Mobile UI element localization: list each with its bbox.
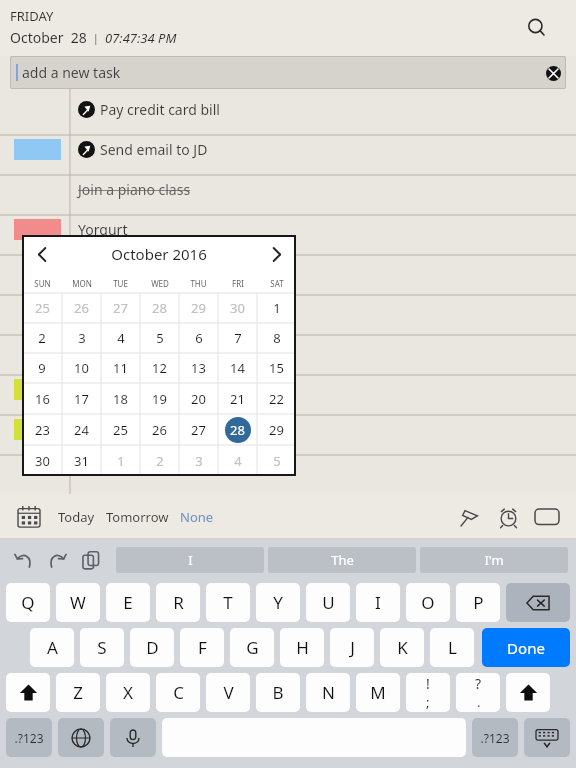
button[interactable]: 1: [101, 445, 140, 476]
button[interactable]: Clear: [540, 60, 566, 86]
button[interactable]: A: [30, 628, 74, 667]
button[interactable]: 14: [218, 353, 257, 383]
button[interactable]: Note: [532, 502, 562, 532]
button[interactable]: P: [456, 583, 500, 622]
button[interactable]: [0, 409, 576, 449]
button[interactable]: [0, 369, 576, 409]
button[interactable]: Voice input: [110, 718, 156, 757]
button[interactable]: 28: [140, 293, 179, 323]
button[interactable]: 25: [101, 414, 140, 445]
button[interactable]: F: [180, 628, 224, 667]
button[interactable]: 24: [62, 414, 101, 445]
button[interactable]: .?123: [6, 718, 52, 757]
button[interactable]: J: [330, 628, 374, 667]
button[interactable]: S: [80, 628, 124, 667]
button[interactable]: Previous month: [28, 240, 56, 268]
button[interactable]: 15: [257, 353, 296, 383]
button[interactable]: 2: [22, 323, 62, 353]
button[interactable]: Tomorrow: [104, 508, 171, 526]
button[interactable]: G: [230, 628, 274, 667]
button[interactable]: Search: [520, 11, 554, 45]
button[interactable]: Shift: [6, 673, 50, 712]
button[interactable]: [0, 329, 576, 369]
button[interactable]: E: [106, 583, 150, 622]
button[interactable]: R: [156, 583, 200, 622]
button[interactable]: 7: [218, 323, 257, 353]
button[interactable]: .?123: [472, 718, 518, 757]
button[interactable]: Alarm: [493, 502, 523, 532]
button[interactable]: [0, 289, 576, 329]
button[interactable]: 26: [62, 293, 101, 323]
button[interactable]: X: [106, 673, 150, 712]
button[interactable]: 17: [62, 383, 101, 414]
button[interactable]: 25: [22, 293, 62, 323]
button[interactable]: Y: [256, 583, 300, 622]
button[interactable]: Shift: [506, 673, 550, 712]
button[interactable]: L: [430, 628, 474, 667]
button[interactable]: Next month: [262, 240, 290, 268]
button[interactable]: 3: [179, 445, 218, 476]
button[interactable]: 3: [62, 323, 101, 353]
button[interactable]: Z: [56, 673, 100, 712]
button[interactable]: V: [206, 673, 250, 712]
button[interactable]: 4: [218, 445, 257, 476]
button[interactable]: [0, 249, 576, 289]
button[interactable]: O: [406, 583, 450, 622]
button[interactable]: 5: [140, 323, 179, 353]
button[interactable]: H: [280, 628, 324, 667]
button[interactable]: M: [356, 673, 400, 712]
button[interactable]: 2: [140, 445, 179, 476]
button[interactable]: K: [380, 628, 424, 667]
button[interactable]: 13: [179, 353, 218, 383]
button[interactable]: 18: [101, 383, 140, 414]
button[interactable]: 16: [22, 383, 62, 414]
button[interactable]: 27: [101, 293, 140, 323]
button[interactable]: Backspace: [506, 583, 570, 622]
button[interactable]: T: [206, 583, 250, 622]
button[interactable]: Redo: [40, 543, 74, 577]
button[interactable]: Copy: [74, 543, 108, 577]
button[interactable]: Calendar: [14, 502, 44, 532]
button[interactable]: 10: [62, 353, 101, 383]
button[interactable]: Hide keyboard: [524, 718, 570, 757]
button[interactable]: Yorgurt: [0, 209, 576, 249]
button[interactable]: 11: [101, 353, 140, 383]
button[interactable]: add a new task: [10, 56, 566, 89]
button[interactable]: 9: [22, 353, 62, 383]
button[interactable]: Join a piano class: [0, 169, 576, 209]
button[interactable]: 1: [257, 293, 296, 323]
button[interactable]: Done: [482, 628, 570, 667]
button[interactable]: ?: [456, 673, 500, 712]
button[interactable]: 21: [218, 383, 257, 414]
button[interactable]: Pin: [454, 502, 484, 532]
button[interactable]: 29: [257, 414, 296, 445]
button[interactable]: Undo: [6, 543, 40, 577]
button[interactable]: The: [268, 547, 416, 573]
button[interactable]: 12: [140, 353, 179, 383]
button[interactable]: Today: [56, 508, 97, 526]
button[interactable]: Q: [6, 583, 50, 622]
button[interactable]: N: [306, 673, 350, 712]
button[interactable]: 5: [257, 445, 296, 476]
button[interactable]: U: [306, 583, 350, 622]
button[interactable]: I'm: [420, 547, 568, 573]
button[interactable]: Pay credit card bill: [0, 89, 576, 129]
button[interactable]: 28: [218, 414, 257, 445]
button[interactable]: Language: [58, 718, 104, 757]
button[interactable]: 19: [140, 383, 179, 414]
button[interactable]: 8: [257, 323, 296, 353]
button[interactable]: 23: [22, 414, 62, 445]
button[interactable]: Send email to JD: [0, 129, 576, 169]
button[interactable]: 4: [101, 323, 140, 353]
button[interactable]: 6: [179, 323, 218, 353]
button[interactable]: C: [156, 673, 200, 712]
button[interactable]: None: [178, 508, 216, 526]
button[interactable]: W: [56, 583, 100, 622]
button[interactable]: D: [130, 628, 174, 667]
button[interactable]: !: [406, 673, 450, 712]
button[interactable]: I: [356, 583, 400, 622]
button[interactable]: 26: [140, 414, 179, 445]
button[interactable]: 29: [179, 293, 218, 323]
button[interactable]: 30: [218, 293, 257, 323]
